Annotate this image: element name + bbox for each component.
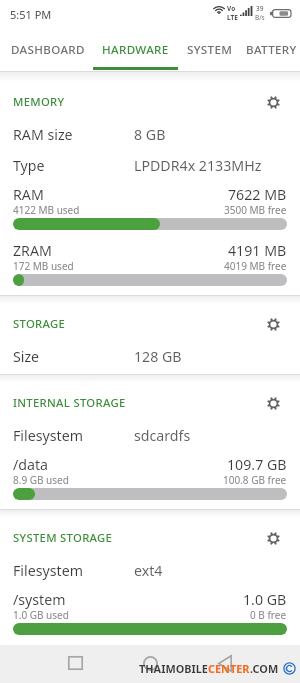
staticText: 172 MB used	[13, 259, 74, 273]
button[interactable]: Type	[0, 152, 300, 183]
staticText: ZRAM	[13, 241, 52, 260]
staticText: BATTERY	[246, 42, 297, 58]
staticText: ext4	[134, 561, 163, 580]
staticText: SYSTEM	[187, 42, 233, 58]
staticText: MEMORY	[13, 94, 65, 109]
button[interactable]: Filesystem	[0, 557, 300, 588]
staticText: 4019 MB free	[224, 259, 287, 273]
staticText: 0 B free	[250, 608, 287, 622]
staticText: /system	[13, 590, 66, 609]
button[interactable]: Filesystem	[0, 422, 300, 453]
staticText: 5:51 PM	[10, 7, 52, 22]
button[interactable]: RAM	[0, 183, 300, 239]
button[interactable]: DASHBOARD	[3, 26, 93, 71]
staticText: LTE	[227, 13, 239, 22]
button[interactable]: /system	[0, 588, 300, 644]
staticText: 1.0 GB	[243, 590, 287, 609]
button[interactable]: /data	[0, 453, 300, 509]
staticText: 3500 MB free	[224, 203, 287, 217]
button[interactable]: ZRAM	[0, 239, 300, 295]
staticText: Filesystem	[13, 561, 134, 580]
staticText: SYSTEM STORAGE	[13, 530, 113, 545]
button[interactable]: Settings	[260, 89, 286, 115]
staticText: 128 GB	[134, 347, 182, 366]
staticText: 1.0 GB used	[13, 608, 69, 622]
staticText: Vo	[227, 4, 236, 13]
staticText: HARDWARE	[102, 42, 169, 58]
staticText: Type	[13, 156, 134, 175]
staticText: 39	[256, 4, 264, 13]
staticText: THAIMOBILE	[139, 661, 208, 676]
button[interactable]: Recents	[60, 648, 90, 678]
staticText: 4191 MB	[228, 241, 287, 260]
staticText: 8.9 GB used	[13, 473, 69, 487]
staticText: .COM	[250, 661, 279, 676]
staticText: /data	[13, 455, 49, 474]
staticText: LPDDR4x 2133MHz	[134, 156, 262, 175]
button[interactable]: Settings	[260, 390, 286, 416]
button[interactable]: HARDWARE	[93, 26, 178, 71]
button[interactable]: Home	[135, 648, 165, 678]
staticText: B/s	[255, 13, 265, 22]
staticText: 4122 MB used	[13, 203, 80, 217]
button[interactable]: Back	[210, 648, 240, 678]
staticText: 7622 MB	[228, 185, 287, 204]
button[interactable]: BATTERY	[242, 26, 300, 71]
staticText: Filesystem	[13, 426, 134, 445]
button[interactable]: RAM size	[0, 121, 300, 152]
staticText: 109.7 GB	[227, 455, 287, 474]
staticText: STORAGE	[13, 316, 66, 331]
staticText: RAM	[13, 185, 44, 204]
button[interactable]: Settings	[260, 525, 286, 551]
staticText: Size	[13, 347, 134, 366]
staticText: INTERNAL STORAGE	[13, 395, 126, 410]
staticText: sdcardfs	[134, 426, 191, 445]
button[interactable]: SYSTEM	[178, 26, 242, 71]
staticText: 100.8 GB free	[223, 473, 287, 487]
staticText: 8 GB	[134, 125, 166, 144]
button[interactable]: Settings	[260, 311, 286, 337]
staticText: DASHBOARD	[11, 42, 85, 58]
staticText: CENTER	[208, 661, 250, 676]
staticText: RAM size	[13, 125, 134, 144]
button[interactable]: Size	[0, 343, 300, 374]
